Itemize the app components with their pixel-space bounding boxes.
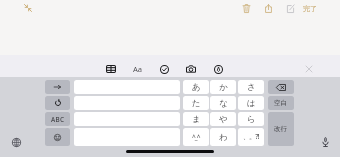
button[interactable]: Next candidate xyxy=(45,80,70,94)
button[interactable]: か xyxy=(210,80,236,94)
button[interactable]: Delete xyxy=(239,0,253,17)
staticText: ABC xyxy=(51,115,65,124)
staticText: は xyxy=(247,98,256,109)
button[interactable]: Aa xyxy=(131,61,145,77)
button[interactable]: Next keyboard xyxy=(8,134,24,150)
button[interactable]: な xyxy=(210,96,236,110)
button[interactable]: ^_^ xyxy=(183,128,209,146)
staticText: ^_^ xyxy=(192,133,200,142)
button[interactable]: Emoji xyxy=(45,128,70,146)
button[interactable]: Camera xyxy=(183,61,199,77)
staticText: Aa xyxy=(133,64,143,74)
staticText: か xyxy=(219,82,228,93)
button[interactable]: Undo xyxy=(45,96,70,110)
button[interactable]: 、。?! xyxy=(238,128,264,146)
button[interactable]: New note xyxy=(283,0,297,17)
staticText: わ xyxy=(219,132,228,143)
button[interactable]: Backspace xyxy=(268,80,294,94)
button[interactable]: さ xyxy=(238,80,264,94)
staticText: な xyxy=(219,98,228,109)
staticText: や xyxy=(219,114,228,125)
button[interactable]: ら xyxy=(238,112,264,126)
button[interactable]: わ xyxy=(210,128,236,146)
button[interactable]: や xyxy=(210,112,236,126)
button[interactable]: Table xyxy=(103,61,119,77)
button[interactable]: Markup xyxy=(210,61,226,77)
staticText: た xyxy=(192,98,201,109)
button[interactable]: た xyxy=(183,96,209,110)
button[interactable]: Close toolbar xyxy=(302,62,316,76)
button[interactable]: Checklist xyxy=(156,61,172,77)
staticText: ら xyxy=(247,114,256,125)
button[interactable]: 改行 xyxy=(268,112,294,146)
staticText: ま xyxy=(192,114,201,125)
staticText: 完了 xyxy=(303,4,317,13)
staticText: 改行 xyxy=(274,125,288,133)
button[interactable]: ま xyxy=(183,112,209,126)
staticText: さ xyxy=(247,82,256,93)
staticText: 空白 xyxy=(274,99,288,107)
button[interactable]: Dictation xyxy=(317,134,333,150)
button[interactable]: 完了 xyxy=(301,0,319,17)
button[interactable]: 空白 xyxy=(268,96,294,110)
button[interactable]: は xyxy=(238,96,264,110)
button[interactable]: ABC xyxy=(45,112,70,126)
staticText: 、。?! xyxy=(243,132,259,142)
button[interactable]: あ xyxy=(183,80,209,94)
button[interactable]: Collapse note xyxy=(21,1,35,15)
staticText: あ xyxy=(192,82,201,93)
button[interactable]: Share xyxy=(261,0,275,17)
